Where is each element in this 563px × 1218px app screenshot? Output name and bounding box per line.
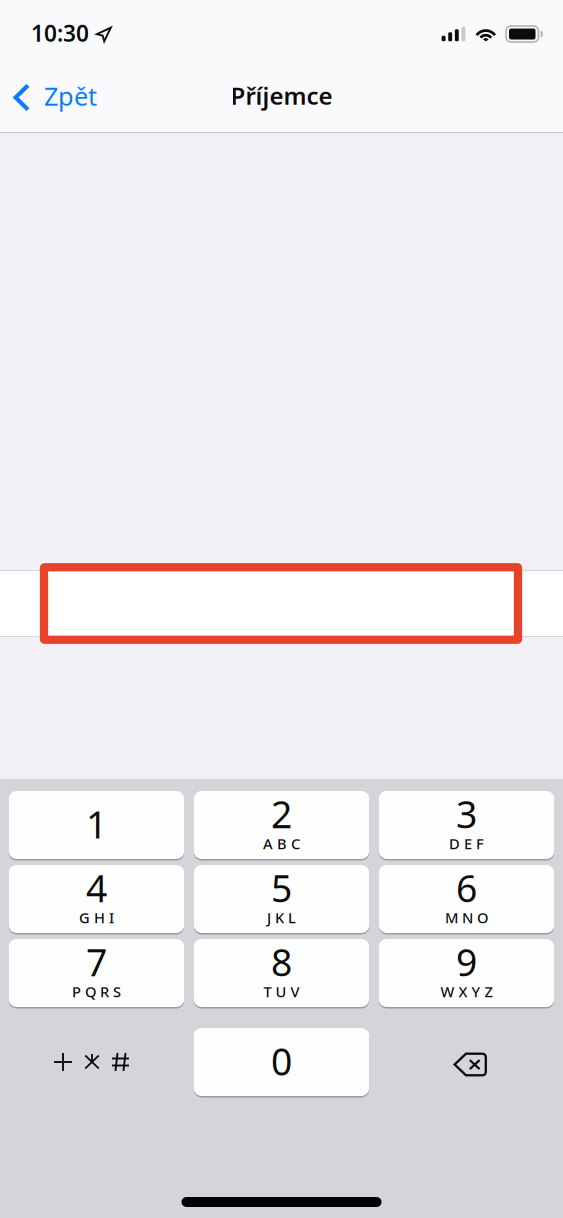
staticText: P Q R S bbox=[72, 982, 121, 1001]
staticText: M N O bbox=[445, 908, 488, 927]
button[interactable]: Plus, star, hash bbox=[9, 1028, 184, 1096]
staticText: Příjemce bbox=[230, 80, 332, 111]
button[interactable]: Delete bbox=[379, 1028, 554, 1096]
button[interactable]: 9 bbox=[379, 939, 554, 1007]
staticText: D E F bbox=[449, 834, 484, 853]
staticText: 9 bbox=[456, 937, 477, 986]
staticText: J K L bbox=[267, 908, 296, 927]
staticText: A B C bbox=[263, 834, 300, 853]
staticText: 6 bbox=[456, 863, 477, 912]
button[interactable]: 8 bbox=[194, 939, 369, 1007]
staticText: 2 bbox=[271, 789, 292, 838]
button[interactable]: 0 bbox=[194, 1028, 369, 1096]
staticText: W X Y Z bbox=[440, 982, 492, 1001]
button[interactable]: 3 bbox=[379, 791, 554, 859]
staticText: 5 bbox=[271, 863, 292, 912]
button[interactable]: 1 bbox=[9, 791, 184, 859]
button[interactable]: 6 bbox=[379, 865, 554, 933]
staticText: 4 bbox=[86, 863, 107, 912]
staticText: 1 bbox=[86, 799, 107, 849]
staticText: 8 bbox=[271, 937, 292, 986]
button[interactable]: 5 bbox=[194, 865, 369, 933]
button[interactable]: Zpět bbox=[0, 72, 109, 126]
button[interactable]: 7 bbox=[9, 939, 184, 1007]
staticText: 10:30 bbox=[31, 18, 89, 48]
staticText: 0 bbox=[271, 1036, 292, 1086]
staticText: 3 bbox=[456, 789, 477, 838]
staticText: T U V bbox=[263, 982, 299, 1001]
button[interactable]: 2 bbox=[194, 791, 369, 859]
staticText: Zpět bbox=[44, 79, 97, 113]
staticText: G H I bbox=[79, 908, 114, 927]
staticText: 7 bbox=[86, 937, 107, 986]
button[interactable]: 4 bbox=[9, 865, 184, 933]
